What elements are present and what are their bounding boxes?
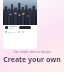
- staticText: Use simple tools to design: [3, 50, 61, 54]
- staticText: Create your own: [3, 55, 61, 65]
